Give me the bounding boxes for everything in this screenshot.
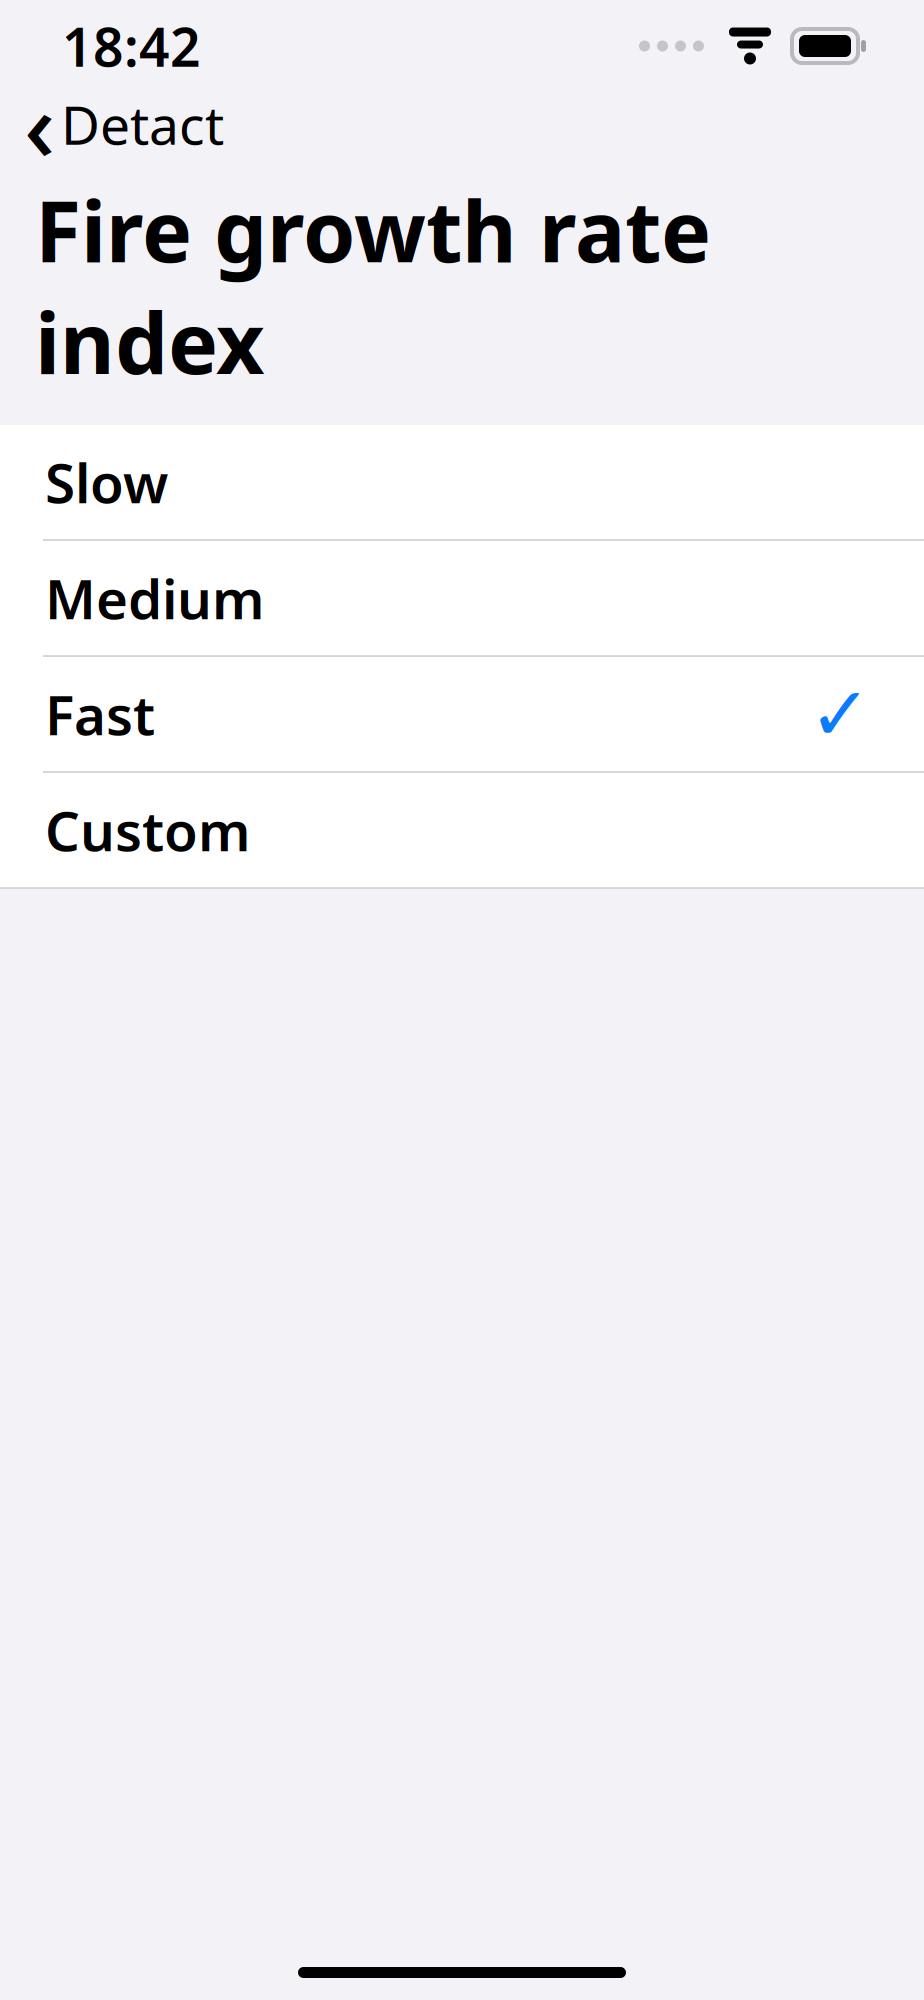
- staticText: Fire growth rate index: [35, 174, 711, 397]
- staticText: Fast: [45, 678, 155, 750]
- button[interactable]: Medium: [0, 541, 924, 655]
- staticText: Medium: [45, 562, 264, 634]
- staticText: Custom: [45, 794, 250, 866]
- staticText: Detact: [61, 89, 224, 159]
- staticText: ‹: [24, 60, 55, 188]
- button[interactable]: Fast: [0, 657, 924, 771]
- button[interactable]: ‹: [0, 92, 244, 156]
- staticText: Slow: [45, 446, 168, 518]
- staticText: ✓: [809, 672, 872, 756]
- staticText: 18:42: [62, 11, 201, 81]
- button[interactable]: Custom: [0, 773, 924, 887]
- button[interactable]: Slow: [0, 425, 924, 539]
